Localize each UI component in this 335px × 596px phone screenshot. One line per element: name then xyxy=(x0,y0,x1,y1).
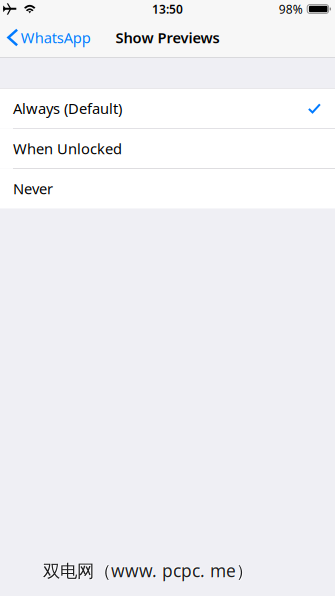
button[interactable]: Never xyxy=(0,169,335,208)
button[interactable]: Always (Default) xyxy=(0,89,335,128)
button[interactable]: When Unlocked xyxy=(0,129,335,168)
staticText: 双电网（www. pcpc. me） xyxy=(42,558,252,581)
button[interactable]: WhatsApp xyxy=(0,18,99,57)
staticText: Show Previews xyxy=(115,28,219,47)
staticText: 双电网（www. pcpc. me） xyxy=(43,559,253,582)
staticText: 双电网（www. pcpc. me） xyxy=(44,560,254,583)
staticText: Always (Default) xyxy=(13,99,122,118)
staticText: WhatsApp xyxy=(21,28,91,47)
staticText: 98% xyxy=(279,1,303,17)
staticText: 13:50 xyxy=(152,1,183,17)
staticText: Never xyxy=(13,179,53,198)
staticText: When Unlocked xyxy=(13,139,122,158)
